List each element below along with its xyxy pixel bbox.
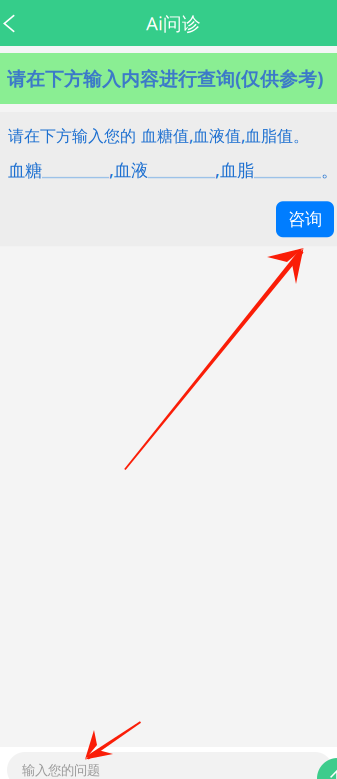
staticText: 请在下方输入内容进行查询(仅供参考)	[7, 66, 323, 91]
staticText: 血糖	[8, 160, 42, 181]
staticText: 。	[321, 160, 337, 181]
staticText: 请在下方输入您的 血糖值,血液值,血脂值。	[8, 125, 309, 146]
staticText: 输入您的问题	[22, 762, 100, 778]
button[interactable]: Send	[317, 758, 337, 779]
button[interactable]: 咨询	[276, 201, 334, 237]
staticText: ,血脂	[215, 158, 254, 181]
button[interactable]: Back	[0, 0, 34, 46]
staticText: Ai问诊	[146, 11, 201, 35]
staticText: ,血液	[109, 158, 148, 181]
staticText: 咨询	[288, 209, 322, 230]
